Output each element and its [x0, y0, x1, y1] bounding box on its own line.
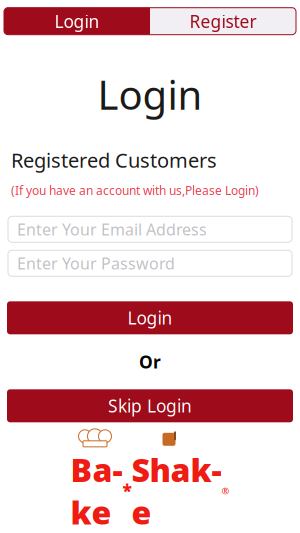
staticText: Enter Your Email Address — [17, 219, 207, 240]
staticText: Bake — [70, 448, 122, 533]
staticText: (If you have an account with us,Please L… — [11, 182, 259, 198]
staticText: Skip Login — [108, 394, 192, 417]
staticText: Enter Your Password — [17, 253, 175, 274]
staticText: Login — [54, 10, 99, 33]
button[interactable]: Register — [150, 8, 296, 35]
staticText: Registered Customers — [11, 147, 217, 173]
button[interactable]: Login — [4, 8, 150, 35]
staticText: Shake — [131, 448, 221, 533]
staticText: Login — [97, 68, 202, 121]
staticText: Register — [189, 10, 256, 33]
staticText: * — [122, 479, 131, 502]
button[interactable]: Login — [7, 301, 293, 334]
staticText: Or — [139, 350, 161, 373]
staticText: ® — [221, 485, 229, 497]
button[interactable]: Skip Login — [7, 389, 293, 422]
staticText: Login — [127, 306, 172, 329]
